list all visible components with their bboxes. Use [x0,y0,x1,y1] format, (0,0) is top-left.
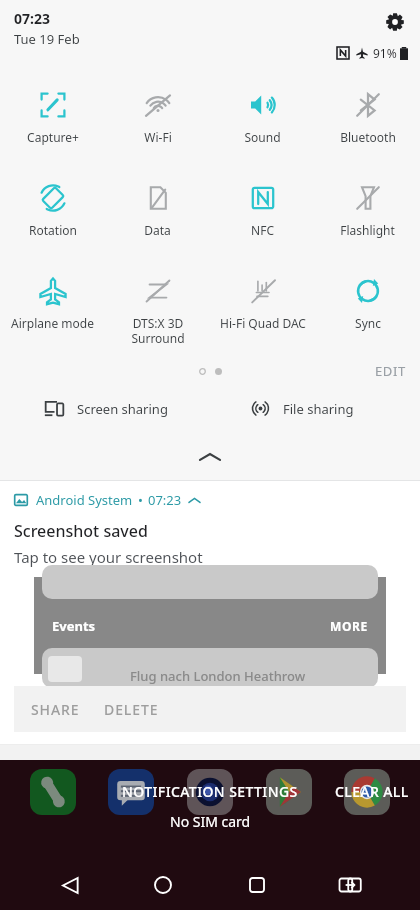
staticText: Bluetooth [340,129,396,145]
staticText: Events [52,617,96,635]
staticText: Capture+ [27,129,79,145]
staticText: CLEAR ALL [335,782,409,801]
button[interactable]: Bluetooth [315,88,420,147]
staticText: Wi-Fi [144,129,172,145]
button[interactable]: Capture+ [0,88,105,147]
button[interactable]: DELETE [92,692,171,727]
staticText: DELETE [104,759,158,778]
button[interactable] [263,766,315,818]
button[interactable]: Hi-Fi Quad DAC [210,274,315,333]
staticText: SHARE [28,759,76,778]
staticText: 91% [373,45,397,61]
button[interactable]: Rotation [0,181,105,240]
button[interactable]: File sharing [210,398,420,419]
button[interactable]: Home [140,862,186,908]
staticText: Screenshot saved [14,520,148,542]
staticText: NFC [251,222,274,238]
button[interactable]: NFC [210,181,315,240]
button[interactable]: SHARE [14,692,92,727]
staticText: Rotation [29,222,77,238]
button[interactable]: Recent apps [234,862,280,908]
button[interactable]: Back [47,862,93,908]
staticText: DTS:X 3D Surround [131,315,185,346]
button[interactable]: Settings [382,9,408,35]
button[interactable]: EDIT [375,362,406,380]
staticText: EDIT [375,362,406,380]
staticText: Screen sharing [77,400,168,418]
staticText: Sound [244,129,281,145]
button[interactable]: Data [105,181,210,240]
staticText: 07:23 [14,9,50,28]
button[interactable]: Airplane mode [0,274,105,333]
staticText: MORE [330,618,368,634]
staticText: No SIM card [170,812,251,831]
button[interactable] [105,766,157,818]
button[interactable]: NOTIFICATION SETTINGS [122,782,298,801]
staticText: NOTIFICATION SETTINGS [122,782,298,801]
staticText: • [138,491,143,509]
button[interactable]: CLEAR ALL [335,782,409,801]
button[interactable]: Flashlight [315,181,420,240]
button[interactable]: Collapse quick settings [0,444,420,470]
button[interactable]: Wi-Fi [105,88,210,147]
staticText: Flashlight [340,222,395,238]
button[interactable]: Screen capture [327,862,373,908]
staticText: Hi-Fi Quad DAC [220,315,306,331]
staticText: Airplane mode [11,315,94,331]
staticText: Data [144,222,171,238]
staticText: Tap to see your screenshot [14,547,203,567]
staticText: Sync [355,315,381,331]
button[interactable]: DTS:X 3D Surround [105,274,210,348]
staticText: Flug nach London Heathrow [130,667,306,685]
button[interactable]: Android System [0,481,420,744]
staticText: 07:23 [148,491,182,509]
staticText: Android System [36,491,133,509]
button[interactable]: Sync [315,274,420,333]
button[interactable]: Sound [210,88,315,147]
button[interactable]: SHARE [0,745,420,797]
staticText: DELETE [104,700,159,719]
button[interactable] [184,766,236,818]
button[interactable]: Screen sharing [0,398,210,419]
button[interactable] [27,766,79,818]
staticText: File sharing [283,400,354,418]
staticText: SHARE [31,700,80,719]
button[interactable] [341,766,393,818]
staticText: Tue 19 Feb [14,30,80,48]
